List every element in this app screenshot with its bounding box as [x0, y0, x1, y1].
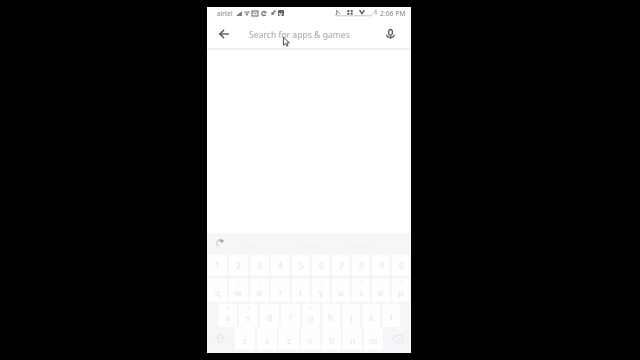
- button[interactable]: 3: [250, 255, 269, 276]
- staticText: i: [360, 287, 363, 299]
- button[interactable]: 2: [229, 255, 248, 276]
- staticText: 3: [258, 280, 261, 286]
- staticText: q: [215, 287, 221, 299]
- button[interactable]: 6: [312, 279, 330, 302]
- staticText: e: [257, 287, 262, 299]
- button[interactable]: 9: [372, 279, 390, 302]
- staticText: 1: [216, 280, 219, 286]
- staticText: @: [226, 305, 230, 311]
- button[interactable]: 8: [352, 255, 370, 276]
- staticText: n: [350, 335, 356, 347]
- staticText: 5: [300, 280, 303, 286]
- staticText: m: [369, 335, 378, 347]
- staticText: 8: [360, 280, 363, 286]
- staticText: p: [398, 287, 404, 299]
- staticText: c: [287, 335, 292, 347]
- staticText: 7: [340, 280, 343, 286]
- button[interactable]: 5: [292, 255, 310, 276]
- staticText: airtel: [217, 9, 233, 18]
- staticText: w: [235, 287, 242, 299]
- button[interactable]: b: [322, 327, 341, 350]
- staticText: 5: [299, 260, 304, 272]
- staticText: d: [267, 312, 273, 324]
- staticText: k: [369, 312, 374, 324]
- button[interactable]: 6: [312, 255, 330, 276]
- staticText: 2: [237, 280, 240, 286]
- staticText: v: [279, 10, 283, 16]
- button[interactable]: Voice search: [377, 23, 403, 44]
- staticText: 0: [400, 280, 403, 286]
- button[interactable]: 9: [372, 255, 390, 276]
- staticText: Search for apps & games: [249, 29, 350, 41]
- button[interactable]: 2: [229, 279, 248, 302]
- staticText: g: [308, 312, 314, 324]
- staticText: 4: [278, 260, 283, 272]
- button[interactable]: $: [260, 304, 279, 327]
- button[interactable]: 0: [392, 255, 410, 276]
- staticText: a: [225, 312, 230, 324]
- staticText: 9: [380, 280, 383, 286]
- staticText: &: [309, 305, 313, 311]
- staticText: x: [265, 335, 270, 347]
- staticText: l: [390, 312, 393, 324]
- staticText: v: [308, 335, 313, 347]
- staticText: 6: [319, 260, 324, 272]
- staticText: !: [373, 328, 375, 334]
- staticText: u: [338, 287, 344, 299]
- staticText: r: [279, 287, 283, 299]
- staticText: s: [246, 312, 251, 324]
- staticText: 1: [215, 260, 220, 272]
- button[interactable]: -: [322, 304, 340, 327]
- staticText: 8: [359, 260, 364, 272]
- button[interactable]: Back: [210, 23, 237, 44]
- button[interactable]: &: [302, 304, 320, 327]
- staticText: 2:06 PM: [380, 9, 406, 18]
- button[interactable]: Backspace: [384, 326, 411, 351]
- button[interactable]: n: [343, 327, 362, 350]
- button[interactable]: 3: [250, 279, 269, 302]
- staticText: 9: [379, 260, 384, 272]
- staticText: f: [289, 312, 292, 324]
- button[interactable]: 0: [392, 279, 410, 302]
- staticText: o: [378, 287, 384, 299]
- button[interactable]: 4: [271, 255, 290, 276]
- staticText: +: [350, 305, 353, 311]
- button[interactable]: (: [362, 304, 380, 327]
- button[interactable]: !: [364, 327, 383, 350]
- staticText: 3: [257, 260, 262, 272]
- button[interactable]: 7: [332, 279, 350, 302]
- staticText: $: [268, 305, 271, 311]
- staticText: b: [329, 335, 335, 347]
- staticText: 0: [399, 260, 404, 272]
- button[interactable]: 7: [332, 255, 350, 276]
- button[interactable]: @: [218, 304, 237, 327]
- staticText: 4: [279, 280, 282, 286]
- staticText: y: [319, 287, 324, 299]
- staticText: ): [390, 305, 392, 311]
- staticText: 2: [236, 260, 241, 272]
- staticText: (: [370, 305, 372, 311]
- button[interactable]: 1: [208, 279, 227, 302]
- staticText: j: [350, 312, 353, 324]
- staticText: #: [247, 305, 250, 311]
- staticText: 6: [320, 280, 323, 286]
- staticText: t: [299, 287, 303, 299]
